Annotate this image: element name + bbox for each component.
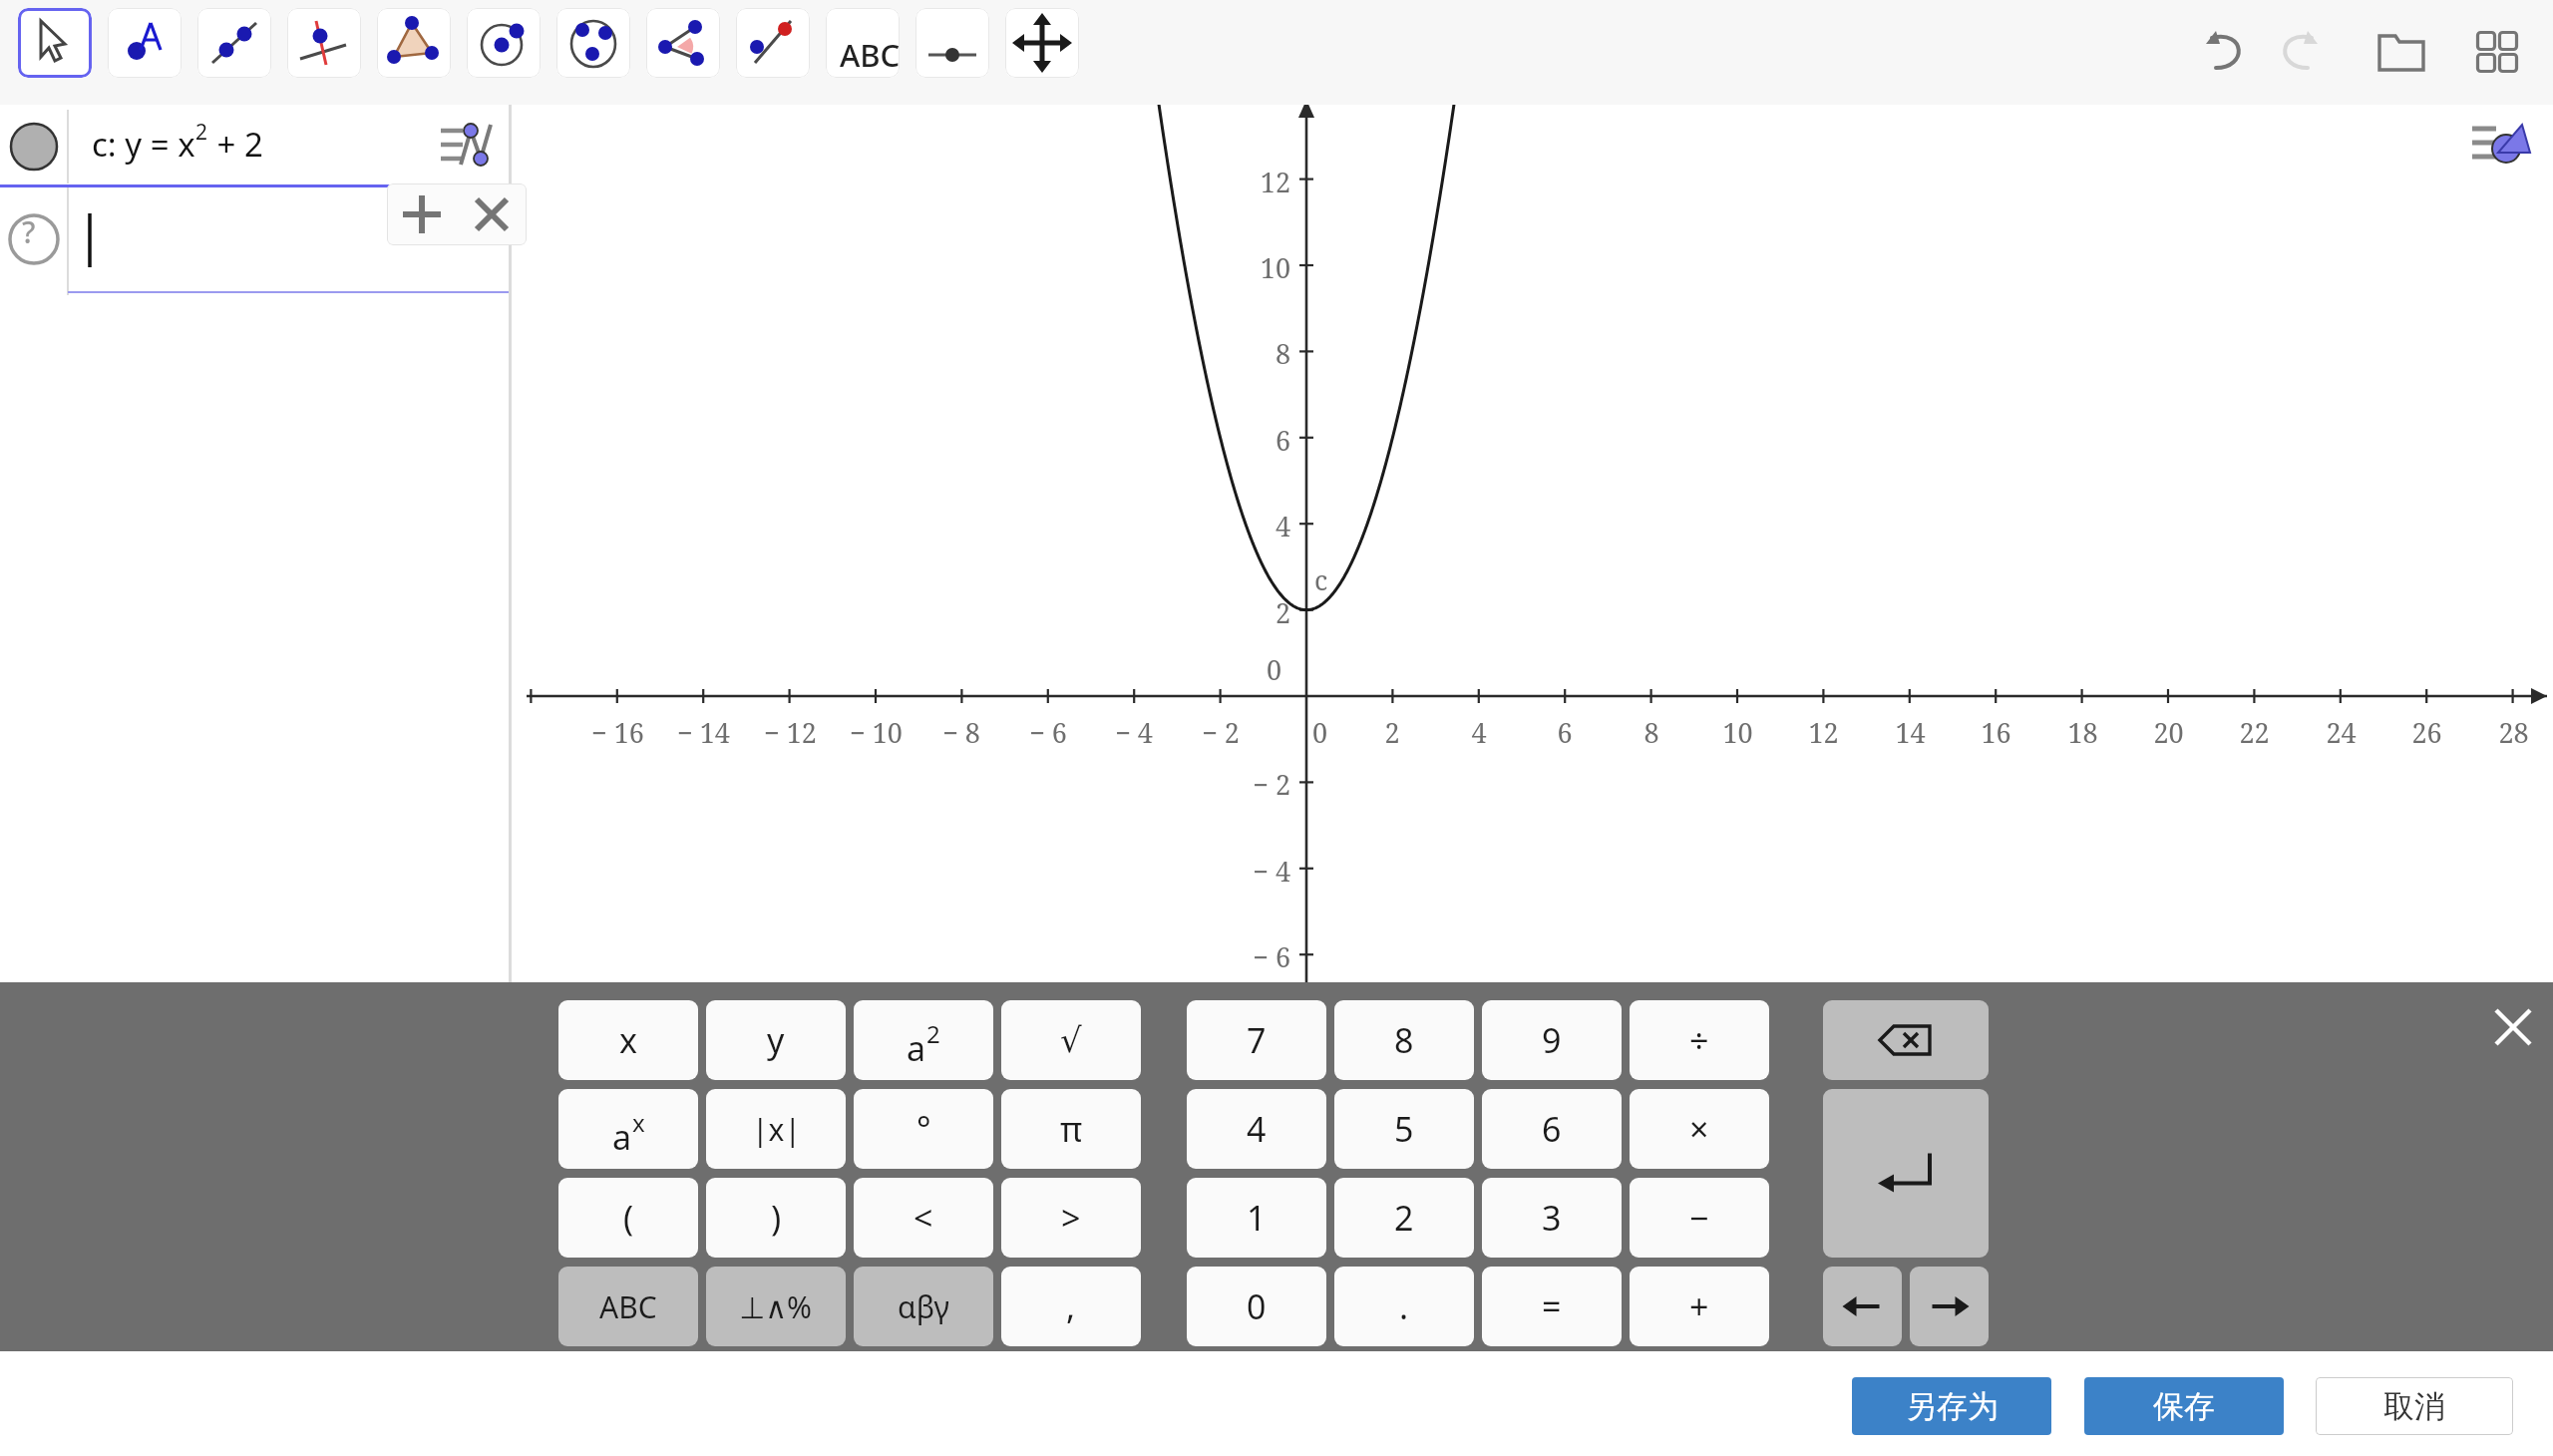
button[interactable]: ⊥∧% (706, 1267, 846, 1346)
button[interactable]: Settings (431, 112, 503, 178)
button[interactable]: 8 (1334, 1000, 1474, 1080)
button[interactable]: × (1630, 1089, 1769, 1169)
staticText: < (913, 1195, 933, 1241)
button[interactable]: Line (197, 8, 271, 78)
button[interactable]: π (1001, 1089, 1141, 1169)
button[interactable]: 4 (1187, 1089, 1326, 1169)
staticText: 5 (1394, 1106, 1414, 1152)
button[interactable]: 9 (1482, 1000, 1622, 1080)
staticText: 4 (1247, 1106, 1267, 1152)
staticText: 3 (1542, 1195, 1562, 1241)
button[interactable]: 另存为 (1852, 1377, 2051, 1435)
button[interactable]: − (1630, 1178, 1769, 1258)
staticText: − 2 (1202, 714, 1240, 751)
button[interactable]: , (1001, 1267, 1141, 1346)
staticText: 6 (1557, 714, 1573, 751)
button[interactable]: |x| (706, 1089, 846, 1169)
button[interactable]: ° (854, 1089, 993, 1169)
button[interactable]: < (854, 1178, 993, 1258)
button[interactable]: ÷ (1630, 1000, 1769, 1080)
button[interactable]: > (1001, 1178, 1141, 1258)
staticText: 6 (1542, 1106, 1562, 1152)
button[interactable]: Ellipse (556, 8, 630, 78)
staticText: − 8 (942, 714, 980, 751)
staticText: + 2 (208, 122, 263, 167)
button[interactable]: 2 (1334, 1178, 1474, 1258)
button[interactable]: Slider (915, 8, 989, 78)
staticText: 0 (1247, 1283, 1267, 1329)
button[interactable]: 1 (1187, 1178, 1326, 1258)
staticText: 6 (1275, 422, 1290, 459)
button[interactable] (0, 187, 509, 297)
button[interactable]: Right (1910, 1267, 1989, 1346)
staticText: 8 (1275, 335, 1290, 372)
staticText: 14 (1895, 714, 1926, 751)
staticText: ? (22, 211, 36, 252)
button[interactable]: + (1630, 1267, 1769, 1346)
staticText: 12 (1260, 164, 1290, 200)
button[interactable]: Graphics settings (2461, 110, 2539, 176)
staticText: 26 (2411, 714, 2442, 751)
button[interactable]: Backspace (1823, 1000, 1989, 1080)
staticText: − 10 (850, 714, 903, 751)
button[interactable]: Circle with center (467, 8, 541, 78)
button[interactable]: Polygon (377, 8, 451, 78)
button[interactable]: Text (826, 8, 900, 78)
button[interactable]: Move (18, 8, 92, 78)
button[interactable]: Redo (2262, 16, 2334, 88)
staticText: ÷ (1689, 1017, 1709, 1063)
button[interactable]: Open file (2366, 16, 2437, 88)
button[interactable]: Menu (2461, 16, 2533, 88)
button[interactable]: y (706, 1000, 846, 1080)
staticText: ABC (840, 34, 901, 76)
staticText: αβγ (898, 1286, 949, 1327)
staticText: y (767, 1017, 785, 1063)
staticText: 20 (2153, 714, 2184, 751)
staticText: 另存为 (1906, 1387, 1999, 1426)
button[interactable]: Undo (2190, 16, 2262, 88)
staticText: + (1689, 1283, 1709, 1329)
staticText: ABC (599, 1286, 657, 1327)
button[interactable]: 取消 (2316, 1377, 2513, 1435)
button[interactable]: √ (1001, 1000, 1141, 1080)
staticText: 2 (926, 1017, 940, 1050)
button[interactable] (0, 108, 509, 185)
staticText: 2 (1384, 714, 1400, 751)
staticText: 1 (1247, 1195, 1267, 1241)
button[interactable]: a (854, 1000, 993, 1080)
button[interactable]: αβγ (854, 1267, 993, 1346)
button[interactable]: 5 (1334, 1089, 1474, 1169)
button[interactable]: Left (1823, 1267, 1902, 1346)
staticText: 4 (1275, 508, 1290, 545)
button[interactable]: = (1482, 1267, 1622, 1346)
button[interactable]: x (558, 1000, 698, 1080)
button[interactable]: Reflect (736, 8, 810, 78)
button[interactable]: Add (387, 183, 457, 245)
button[interactable]: 保存 (2084, 1377, 2284, 1435)
staticText: 0 (1267, 651, 1282, 688)
button[interactable]: Close keyboard (2483, 997, 2543, 1057)
button[interactable]: ABC (558, 1267, 698, 1346)
button[interactable]: a (558, 1089, 698, 1169)
button[interactable]: 0 (1187, 1267, 1326, 1346)
button[interactable]: . (1334, 1267, 1474, 1346)
button[interactable]: Close (457, 183, 527, 245)
button[interactable]: ) (706, 1178, 846, 1258)
staticText: 8 (1394, 1017, 1414, 1063)
button[interactable]: 7 (1187, 1000, 1326, 1080)
staticText: ⊥∧% (739, 1286, 813, 1327)
button[interactable]: Angle (646, 8, 720, 78)
staticText: 保存 (2153, 1387, 2215, 1426)
button[interactable]: 3 (1482, 1178, 1622, 1258)
button[interactable]: ( (558, 1178, 698, 1258)
button[interactable]: 6 (1482, 1089, 1622, 1169)
button[interactable]: Point (108, 8, 182, 78)
button[interactable]: Enter (1823, 1089, 1989, 1258)
staticText: a (907, 1025, 926, 1071)
button[interactable]: Move graphics view (1005, 8, 1079, 78)
staticText: √ (1060, 1020, 1082, 1060)
button[interactable]: Perpendicular line (287, 8, 361, 78)
staticText: 2 (1394, 1195, 1414, 1241)
staticText: 16 (1981, 714, 2011, 751)
staticText: ( (623, 1195, 634, 1241)
